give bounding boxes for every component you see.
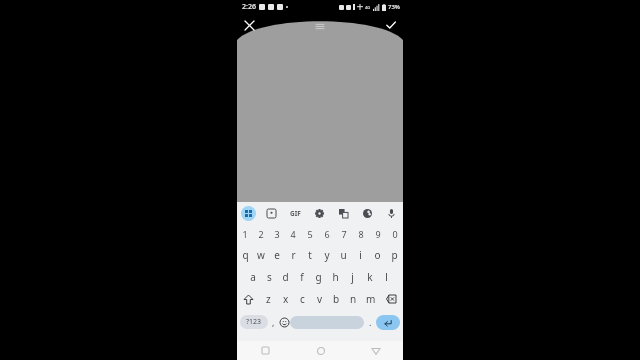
button[interactable]: q <box>237 244 253 266</box>
staticText: 4 <box>290 228 296 240</box>
button[interactable]: z <box>260 288 277 310</box>
staticText: a <box>250 270 256 284</box>
staticText: z <box>266 292 271 306</box>
button[interactable]: a <box>245 266 261 288</box>
button[interactable]: s <box>261 266 277 288</box>
button[interactable]: d <box>277 266 293 288</box>
button[interactable]: 4 <box>285 224 301 244</box>
button[interactable]: t <box>301 244 318 266</box>
button[interactable]: g <box>310 266 327 288</box>
staticText: v <box>317 292 323 306</box>
staticText: m <box>366 292 376 306</box>
staticText: 2:26 <box>242 2 256 12</box>
button[interactable]: b <box>328 288 345 310</box>
button[interactable]: 5 <box>301 224 318 244</box>
button[interactable]: 0 <box>386 224 403 244</box>
button[interactable]: 7 <box>335 224 352 244</box>
staticText: s <box>267 270 272 284</box>
staticText: n <box>350 292 357 306</box>
button[interactable]: Back <box>348 341 403 360</box>
staticText: w <box>257 248 265 262</box>
button[interactable]: 3 <box>269 224 285 244</box>
staticText: r <box>291 248 296 262</box>
staticText: 4G <box>365 5 371 10</box>
staticText: d <box>282 270 289 284</box>
staticText: ?123 <box>246 317 262 327</box>
staticText: g <box>315 270 322 284</box>
staticText: b <box>333 292 340 306</box>
staticText: x <box>283 292 289 306</box>
staticText: k <box>367 270 373 284</box>
button[interactable]: k <box>361 266 378 288</box>
button[interactable]: v <box>311 288 328 310</box>
button[interactable]: 8 <box>352 224 369 244</box>
button[interactable]: n <box>345 288 362 310</box>
button[interactable]: Backspace <box>379 288 403 310</box>
staticText: t <box>308 248 312 262</box>
button[interactable]: Home <box>293 341 348 360</box>
button[interactable]: w <box>253 244 269 266</box>
button[interactable]: Translate <box>331 202 355 224</box>
staticText: 2 <box>258 228 264 240</box>
button[interactable]: Settings <box>307 202 331 224</box>
staticText: o <box>374 248 381 262</box>
staticText: f <box>300 270 304 284</box>
staticText: 0 <box>392 228 398 240</box>
staticText: e <box>274 248 280 262</box>
staticText: 9 <box>375 228 381 240</box>
button[interactable]: j <box>344 266 361 288</box>
button[interactable]: . <box>364 310 376 334</box>
staticText: l <box>385 270 388 284</box>
button[interactable]: , <box>268 310 278 334</box>
button[interactable]: m <box>362 288 379 310</box>
button[interactable]: GIF <box>283 202 307 224</box>
button[interactable]: u <box>335 244 352 266</box>
button[interactable]: Stickers <box>237 202 260 224</box>
button[interactable]: Recents <box>237 341 293 360</box>
button[interactable]: e <box>269 244 285 266</box>
button[interactable]: 6 <box>318 224 335 244</box>
button[interactable]: c <box>294 288 311 310</box>
staticText: p <box>391 248 398 262</box>
button[interactable]: h <box>327 266 344 288</box>
button[interactable]: 1 <box>237 224 253 244</box>
button[interactable]: Space <box>290 316 364 329</box>
button[interactable]: r <box>285 244 301 266</box>
button[interactable]: x <box>277 288 294 310</box>
staticText: 3 <box>274 228 280 240</box>
button[interactable]: Themes <box>355 202 379 224</box>
button[interactable]: Image <box>260 202 283 224</box>
button[interactable]: Shift <box>237 288 260 310</box>
staticText: 73% <box>388 3 400 11</box>
button[interactable]: y <box>318 244 335 266</box>
button[interactable]: Close <box>239 15 259 35</box>
staticText: 6 <box>324 228 330 240</box>
staticText: q <box>242 248 249 262</box>
button[interactable]: Enter <box>376 315 400 330</box>
button[interactable]: l <box>378 266 395 288</box>
staticText: i <box>359 248 362 262</box>
staticText: y <box>324 248 330 262</box>
staticText: 7 <box>341 228 347 240</box>
staticText: 1 <box>242 228 248 240</box>
staticText: j <box>351 270 354 284</box>
staticText: GIF <box>290 209 301 218</box>
button[interactable]: f <box>293 266 310 288</box>
button[interactable]: ?123 <box>240 315 268 329</box>
button[interactable]: Voice input <box>379 202 403 224</box>
button[interactable]: 2 <box>253 224 269 244</box>
staticText: , <box>272 316 275 328</box>
button[interactable]: 9 <box>369 224 386 244</box>
button[interactable]: i <box>352 244 369 266</box>
staticText: 8 <box>358 228 364 240</box>
button[interactable]: Confirm <box>381 15 401 35</box>
staticText: u <box>340 248 347 262</box>
staticText: c <box>300 292 305 306</box>
button[interactable]: o <box>369 244 386 266</box>
staticText: h <box>332 270 339 284</box>
button[interactable]: Emoji <box>278 310 290 334</box>
button[interactable]: p <box>386 244 403 266</box>
staticText: . <box>369 316 372 328</box>
staticText: 5 <box>307 228 313 240</box>
